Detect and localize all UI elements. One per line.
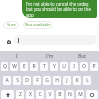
staticText: D [25, 77, 29, 84]
staticText: Y [53, 63, 56, 70]
button[interactable]: T [40, 62, 48, 71]
button[interactable]: O [80, 62, 88, 71]
staticText: J [66, 77, 68, 84]
button[interactable]: Y [50, 62, 58, 71]
button[interactable]: But [66, 51, 99, 61]
staticText: Sure [7, 22, 16, 28]
staticText: P [92, 63, 96, 70]
button[interactable]: I [0, 51, 33, 61]
button[interactable]: W [10, 62, 18, 71]
button[interactable]: I [70, 62, 78, 71]
button[interactable]: R [30, 62, 38, 71]
button[interactable]: Q [1, 62, 8, 71]
button[interactable]: G [43, 76, 51, 85]
staticText: Z [19, 91, 22, 98]
button[interactable]: B [56, 90, 64, 99]
staticText: Q [3, 63, 7, 70]
button[interactable]: Camera [7, 40, 11, 44]
staticText: U [62, 63, 66, 70]
staticText: Not available [25, 22, 51, 28]
button[interactable]: J [63, 76, 71, 85]
staticText: N [68, 91, 72, 98]
button[interactable]: Z [16, 90, 24, 99]
button[interactable]: U [60, 62, 68, 71]
button[interactable]: Backspace [86, 90, 98, 99]
staticText: H [55, 77, 59, 84]
button[interactable]: X [26, 90, 34, 99]
button[interactable]: C [36, 90, 44, 99]
staticText: I'm not able to cancel the order, but yo… [26, 1, 91, 18]
button[interactable]: M [76, 90, 84, 99]
staticText: R [32, 63, 36, 70]
staticText: F [36, 77, 39, 84]
button[interactable]: P [90, 62, 98, 71]
staticText: W [12, 63, 17, 70]
button[interactable]: V [46, 90, 54, 99]
button[interactable]: Not available [23, 21, 53, 29]
button[interactable]: Shift [1, 90, 14, 99]
staticText: L [86, 77, 89, 84]
staticText: S [16, 77, 19, 84]
staticText: X [29, 91, 32, 98]
staticText: K [75, 77, 79, 84]
button[interactable]: E [20, 62, 28, 71]
button[interactable]: H [53, 76, 61, 85]
button[interactable]: S [13, 76, 21, 85]
button[interactable] [14, 35, 97, 45]
staticText: C [38, 91, 42, 98]
staticText: B [58, 91, 62, 98]
staticText: O [82, 63, 86, 70]
staticText: G [45, 77, 49, 84]
staticText: T [43, 63, 46, 70]
button[interactable]: Sure [3, 21, 19, 29]
button[interactable]: N [66, 90, 74, 99]
staticText: E [23, 63, 26, 70]
staticText: But [78, 53, 87, 60]
button[interactable]: L [83, 76, 91, 85]
staticText: A [5, 77, 9, 84]
staticText: I'm [46, 53, 54, 60]
button[interactable]: F [33, 76, 41, 85]
button[interactable]: D [23, 76, 31, 85]
staticText: M [78, 91, 83, 98]
staticText: V [48, 91, 52, 98]
staticText: I [73, 63, 75, 70]
button[interactable]: K [73, 76, 81, 85]
button[interactable]: I'm [33, 51, 66, 61]
staticText: I [16, 53, 18, 60]
button[interactable]: A [3, 76, 11, 85]
